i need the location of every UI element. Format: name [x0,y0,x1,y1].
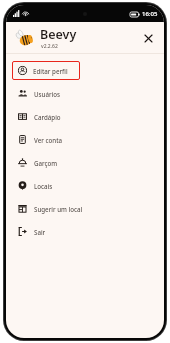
staticText: Locais [34,182,53,190]
button[interactable]: Cardápio [6,105,164,128]
button[interactable]: Editar perfil [12,61,80,80]
button[interactable]: Fechar [139,29,157,47]
button[interactable]: Sair [6,220,164,243]
staticText: Beevy [40,26,77,43]
staticText: Usuários [34,90,61,98]
button[interactable]: Ver conta [6,128,164,151]
staticText: Editar perfil [33,67,68,75]
staticText: Garçom [34,159,58,167]
staticText: Sair [34,228,46,236]
button[interactable]: Locais [6,174,164,197]
staticText: Cardápio [34,113,61,121]
button[interactable]: Sugerir um local [6,197,164,220]
staticText: v2.2.62 [41,43,58,50]
staticText: Sugerir um local [34,205,83,213]
button[interactable]: Garçom [6,151,164,174]
staticText: 16:05 [142,10,158,18]
button[interactable]: Usuários [6,82,164,105]
staticText: Ver conta [34,136,63,144]
